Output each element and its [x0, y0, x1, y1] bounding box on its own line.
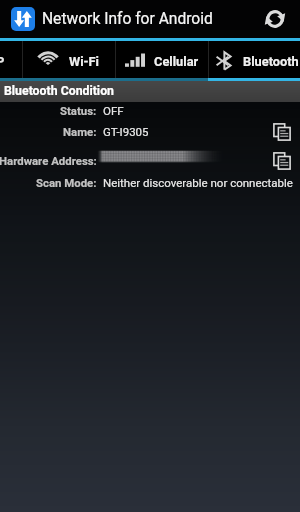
staticText: Neither discoverable nor connectable [103, 176, 293, 189]
staticText: Bluetooth [243, 54, 299, 69]
staticText: Cellular [154, 54, 199, 69]
staticText: GT-I9305 [103, 125, 149, 138]
button[interactable]: P [0, 41, 22, 81]
staticText: OFF [103, 104, 124, 117]
button[interactable]: Copy [272, 122, 292, 142]
button[interactable]: Refresh [256, 0, 294, 38]
staticText: Bluetooth Condition [4, 84, 114, 98]
staticText: P [0, 54, 5, 69]
staticText: Wi-Fi [69, 54, 99, 69]
button[interactable]: Wi-Fi [22, 41, 115, 81]
staticText: Scan Mode: [36, 176, 97, 189]
button[interactable]: Copy [272, 151, 292, 171]
staticText: Hardware Address: [0, 154, 97, 167]
staticText: Name: [63, 125, 97, 138]
staticText: Network Info for Android [42, 10, 213, 28]
staticText: Status: [60, 104, 97, 117]
button[interactable]: Bluetooth [208, 41, 300, 81]
button[interactable]: Cellular [115, 41, 208, 81]
